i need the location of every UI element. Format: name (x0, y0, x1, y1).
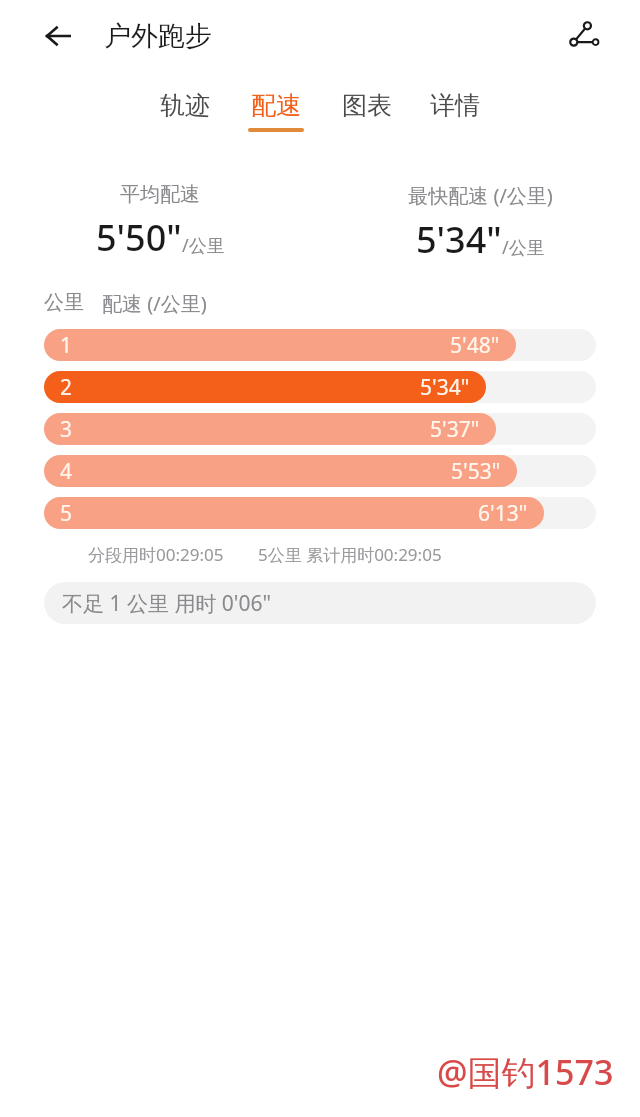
staticText: 最快配速 (/公里) (408, 182, 553, 209)
staticText: 详情 (430, 90, 480, 121)
staticText: 公里 (44, 290, 84, 315)
button[interactable]: 配速 (242, 88, 310, 134)
staticText: 4 (60, 457, 73, 486)
button[interactable]: 详情 (424, 88, 486, 130)
button[interactable]: 1 (44, 329, 596, 361)
button[interactable]: 2 (44, 371, 596, 403)
staticText: 轨迹 (160, 90, 210, 121)
button[interactable]: 5 (44, 497, 596, 529)
staticText: 6'13" (478, 499, 528, 528)
button[interactable]: Share (558, 10, 610, 62)
staticText: 分段用时00:29:05 (88, 543, 224, 566)
staticText: 2 (60, 373, 73, 402)
staticText: 配速 (/公里) (102, 290, 207, 317)
staticText: /公里 (502, 235, 545, 260)
staticText: 平均配速 (120, 182, 200, 207)
staticText: 5'48" (450, 331, 500, 360)
button[interactable]: 图表 (336, 88, 398, 130)
staticText: 不足 1 公里 用时 0'06" (62, 589, 272, 618)
staticText: @国钓1573 (437, 1049, 614, 1095)
staticText: 5'34" (420, 373, 470, 402)
staticText: 5 (60, 499, 73, 528)
button[interactable]: 4 (44, 455, 596, 487)
button[interactable]: 3 (44, 413, 596, 445)
staticText: 5公里 累计用时00:29:05 (258, 543, 442, 566)
staticText: 5'34" (416, 215, 502, 264)
staticText: 1 (60, 331, 73, 360)
staticText: /公里 (182, 233, 225, 258)
staticText: 5'37" (430, 415, 480, 444)
button[interactable]: Back (34, 12, 82, 60)
staticText: 户外跑步 (104, 19, 212, 53)
button[interactable]: 轨迹 (154, 88, 216, 130)
staticText: 配速 (251, 90, 301, 121)
staticText: 图表 (342, 90, 392, 121)
staticText: 5'50" (96, 213, 182, 262)
staticText: 5'53" (451, 457, 501, 486)
button[interactable]: 不足 1 公里 用时 0'06" (44, 582, 596, 624)
staticText: 3 (60, 415, 73, 444)
